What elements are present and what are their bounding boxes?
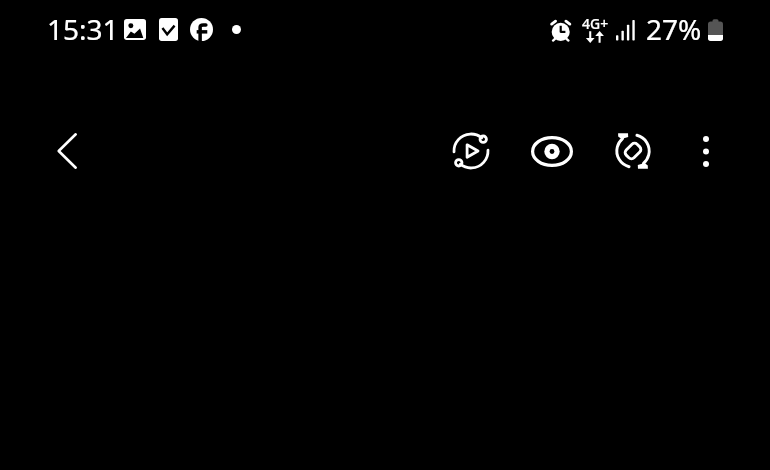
- button[interactable]: More options: [682, 127, 730, 175]
- button[interactable]: Auto rotate: [609, 127, 657, 175]
- staticText: 4G+: [582, 14, 609, 33]
- button[interactable]: Preview: [528, 127, 576, 175]
- button[interactable]: Motion photo: [447, 127, 495, 175]
- staticText: 15:31: [47, 10, 119, 48]
- staticText: 27%: [646, 10, 702, 48]
- button[interactable]: Back: [43, 127, 91, 175]
